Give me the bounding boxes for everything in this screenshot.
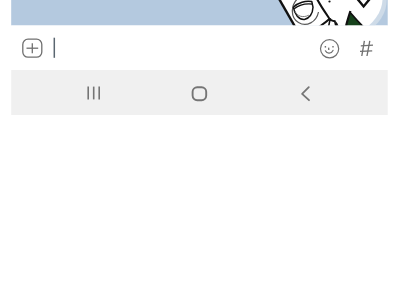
button[interactable]: Home <box>137 70 263 115</box>
button[interactable]: Hashtag <box>356 37 378 59</box>
button[interactable]: Recents <box>11 70 137 115</box>
button[interactable]: Emoji <box>318 37 342 61</box>
button[interactable]: Back <box>263 70 389 115</box>
button[interactable]: Add attachment <box>20 36 44 60</box>
button[interactable]: Message input <box>48 32 310 64</box>
